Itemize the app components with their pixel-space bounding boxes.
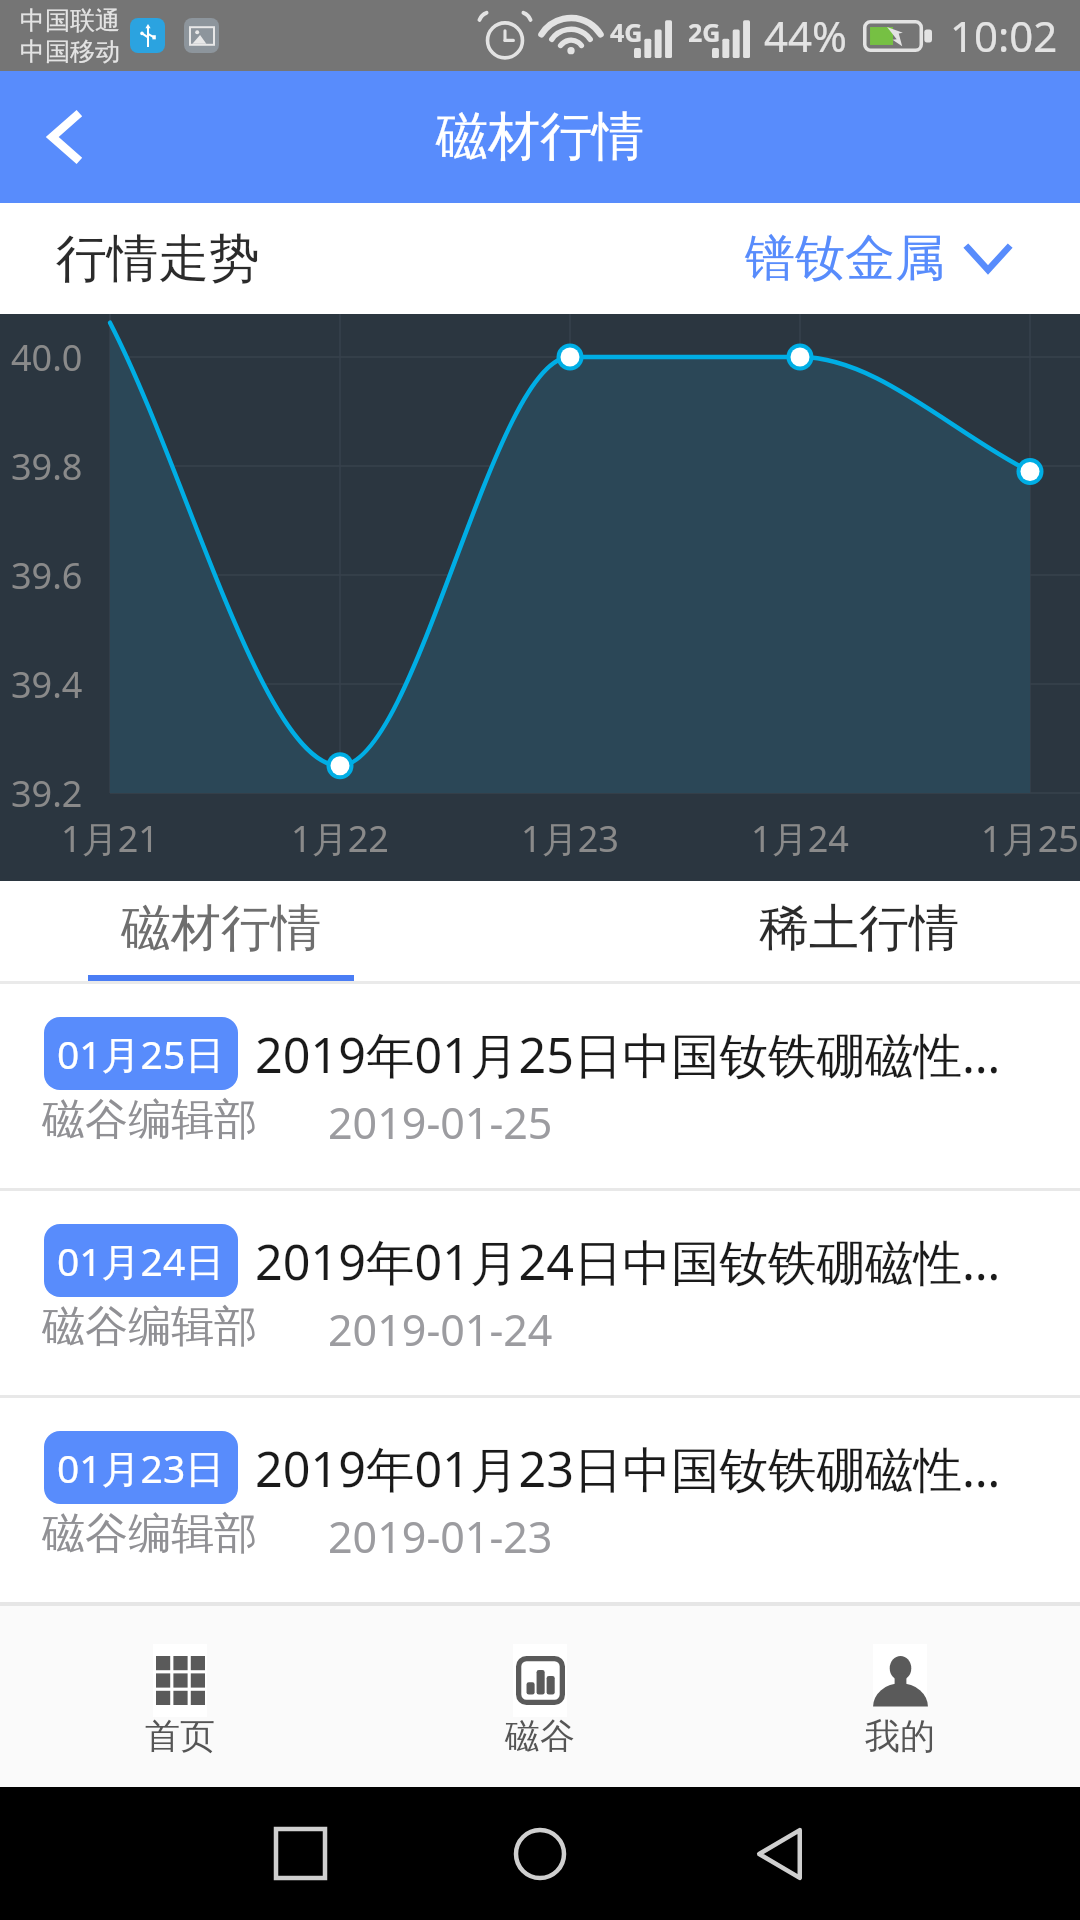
staticText: 1月21: [10, 814, 210, 863]
staticText: 2019年01月23日中国钕铁硼磁性…: [255, 1435, 1001, 1501]
button[interactable]: 磁材行情: [88, 881, 354, 975]
staticText: 4G: [610, 15, 643, 49]
staticText: 中国移动: [20, 36, 120, 67]
staticText: 首页: [145, 1714, 215, 1758]
button[interactable]: 我的: [720, 1602, 1080, 1787]
staticText: 01月24日: [57, 1234, 225, 1287]
staticText: 01月25日: [57, 1027, 225, 1080]
button[interactable]: 01月24日: [0, 1191, 1080, 1395]
staticText: 我的: [865, 1714, 935, 1758]
staticText: 磁谷编辑部: [42, 1300, 257, 1354]
button[interactable]: 01月25日: [0, 984, 1080, 1188]
button[interactable]: Recents: [270, 1787, 330, 1920]
staticText: 2019-01-24: [328, 1300, 553, 1359]
staticText: 01月23日: [57, 1441, 225, 1494]
button[interactable]: 稀土行情: [726, 881, 992, 975]
staticText: 磁谷编辑部: [42, 1093, 257, 1147]
staticText: 磁谷: [505, 1714, 575, 1758]
staticText: 39.2: [11, 769, 83, 818]
staticText: 中国联通: [20, 5, 120, 36]
button[interactable]: 01月23日: [0, 1398, 1080, 1602]
staticText: 40.0: [11, 333, 83, 382]
staticText: 磁谷编辑部: [42, 1507, 257, 1561]
staticText: 39.6: [11, 551, 83, 600]
staticText: 2019-01-25: [328, 1093, 553, 1152]
staticText: 10:02: [950, 7, 1058, 64]
staticText: 39.8: [11, 442, 83, 491]
button[interactable]: Back: [750, 1787, 810, 1920]
button[interactable]: 磁谷: [360, 1602, 720, 1787]
button[interactable]: Home: [510, 1787, 570, 1920]
staticText: 2G: [688, 15, 721, 49]
staticText: 稀土行情: [759, 897, 959, 960]
staticText: 磁材行情: [436, 104, 644, 170]
staticText: 1月23: [470, 814, 670, 863]
staticText: 1月24: [700, 814, 900, 863]
staticText: 2019-01-23: [328, 1507, 553, 1566]
button[interactable]: Back: [0, 71, 130, 203]
staticText: 磁材行情: [121, 897, 321, 960]
staticText: 2019年01月24日中国钕铁硼磁性…: [255, 1228, 1001, 1294]
staticText: 行情走势: [56, 227, 260, 291]
staticText: 镨钕金属: [745, 227, 945, 290]
staticText: 44%: [764, 7, 847, 64]
staticText: 39.4: [11, 660, 83, 709]
staticText: 1月22: [240, 814, 440, 863]
button[interactable]: 镨钕金属: [745, 227, 1010, 290]
staticText: 2019年01月25日中国钕铁硼磁性…: [255, 1021, 1001, 1087]
button[interactable]: 首页: [0, 1602, 360, 1787]
staticText: 1月25: [930, 814, 1080, 863]
